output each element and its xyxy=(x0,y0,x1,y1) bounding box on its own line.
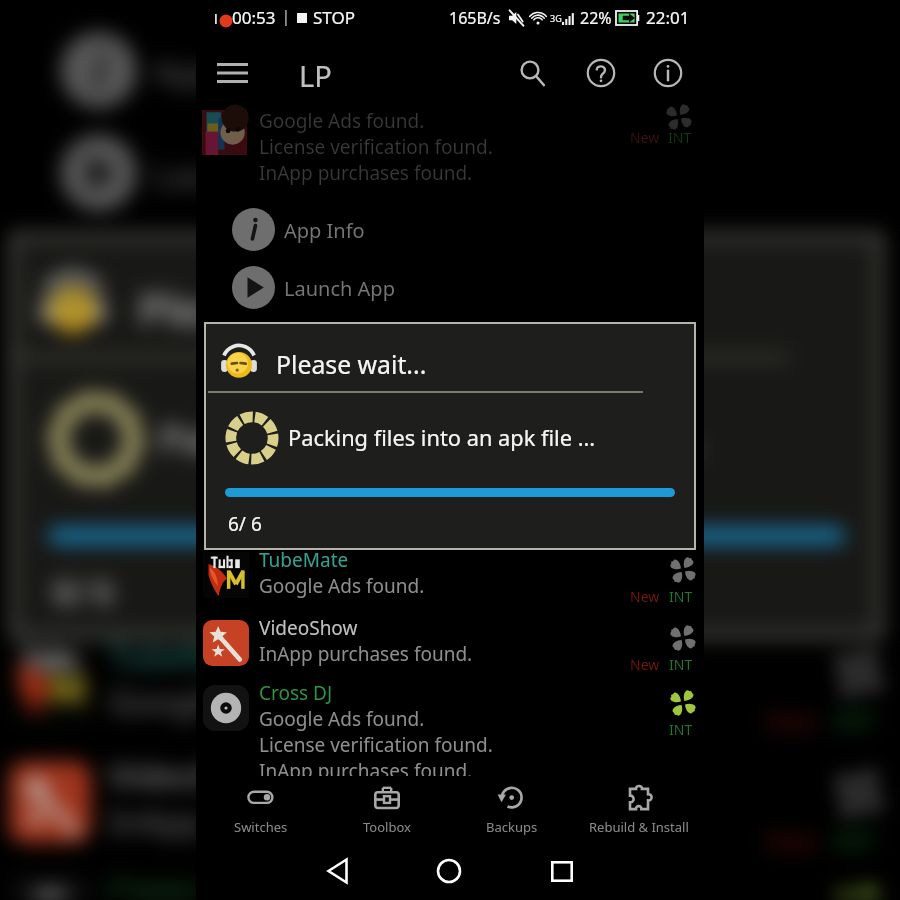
staticText: Please wait... xyxy=(276,347,427,381)
staticText: INT xyxy=(834,823,877,857)
staticText: InApp purchases found. xyxy=(259,758,473,784)
staticText: New xyxy=(630,128,660,147)
staticText: Google Ads found. xyxy=(259,706,425,732)
button[interactable]: Toolbox xyxy=(326,776,448,843)
staticText: VideoShow xyxy=(108,753,284,799)
button[interactable]: Backups xyxy=(451,776,573,843)
staticText: TubeMate xyxy=(259,547,349,573)
staticText: INT xyxy=(669,655,693,674)
button[interactable]: Home xyxy=(421,843,477,899)
button[interactable]: Back xyxy=(309,843,365,899)
button[interactable]: Search xyxy=(509,49,557,97)
staticText: New xyxy=(630,655,660,674)
button[interactable]: TubeMate xyxy=(200,547,700,616)
staticText: TubeMate xyxy=(108,632,268,678)
staticText: Backups xyxy=(486,818,538,836)
staticText: LP xyxy=(299,56,332,95)
button[interactable]: VideoShow xyxy=(4,753,889,875)
button[interactable]: Cross DJ xyxy=(4,868,889,900)
button[interactable]: Open navigation menu xyxy=(208,49,256,97)
staticText: InApp purchases found. xyxy=(108,799,487,845)
staticText: 3G xyxy=(550,12,562,24)
staticText: Cross DJ xyxy=(259,680,333,706)
staticText: Switches xyxy=(234,818,288,836)
button[interactable]: Launch App xyxy=(4,122,889,223)
button[interactable]: Launch App xyxy=(200,259,700,316)
button[interactable]: TubeMate xyxy=(4,632,889,754)
staticText: VideoShow xyxy=(259,615,358,641)
button[interactable]: Switches xyxy=(200,776,322,843)
staticText: License verification found. xyxy=(259,732,493,758)
staticText: InApp purchases found. xyxy=(259,160,473,186)
button[interactable]: Recent apps xyxy=(534,843,590,899)
button[interactable]: Help xyxy=(577,49,625,97)
staticText: New xyxy=(765,823,818,857)
staticText: INT xyxy=(669,720,693,739)
button[interactable]: App Info xyxy=(200,201,700,258)
staticText: Launch App xyxy=(153,151,349,199)
staticText: New xyxy=(630,587,660,606)
button[interactable]: App information xyxy=(644,49,692,97)
staticText: Please wait... xyxy=(138,278,406,338)
staticText: Launch App xyxy=(284,275,395,302)
staticText: 165B/s xyxy=(449,7,501,29)
staticText: Google Ads found. xyxy=(108,678,402,724)
button[interactable]: App Info xyxy=(4,20,889,121)
staticText: InApp purchases found. xyxy=(259,641,473,667)
staticText: 6/ 6 xyxy=(54,568,114,614)
staticText: STOP xyxy=(313,6,356,29)
staticText: 22% xyxy=(580,7,612,29)
staticText: App Info xyxy=(284,217,365,244)
staticText: New xyxy=(765,703,818,737)
staticText: INT xyxy=(834,703,877,737)
button[interactable]: Cross DJ xyxy=(200,680,700,790)
staticText: Toolbox xyxy=(363,818,411,836)
staticText: Cross DJ xyxy=(108,868,239,900)
staticText: App Info xyxy=(153,48,296,96)
staticText: 22:01 xyxy=(646,6,690,29)
staticText: Packing files into an apk file ... xyxy=(160,413,705,466)
staticText: INT xyxy=(669,587,693,606)
staticText: Packing files into an apk file ... xyxy=(288,423,596,453)
staticText: INT xyxy=(668,128,692,147)
staticText: 00:53 xyxy=(232,6,276,29)
staticText: Google Ads found. xyxy=(259,573,425,599)
staticText: Google Ads found. xyxy=(259,108,425,134)
button[interactable]: Google Ads found. xyxy=(200,100,700,186)
button[interactable]: VideoShow xyxy=(200,615,700,684)
staticText: License verification found. xyxy=(259,134,493,160)
staticText: 6/ 6 xyxy=(228,511,262,537)
button[interactable]: Rebuild & Install xyxy=(578,776,700,843)
staticText: Rebuild & Install xyxy=(589,818,689,836)
